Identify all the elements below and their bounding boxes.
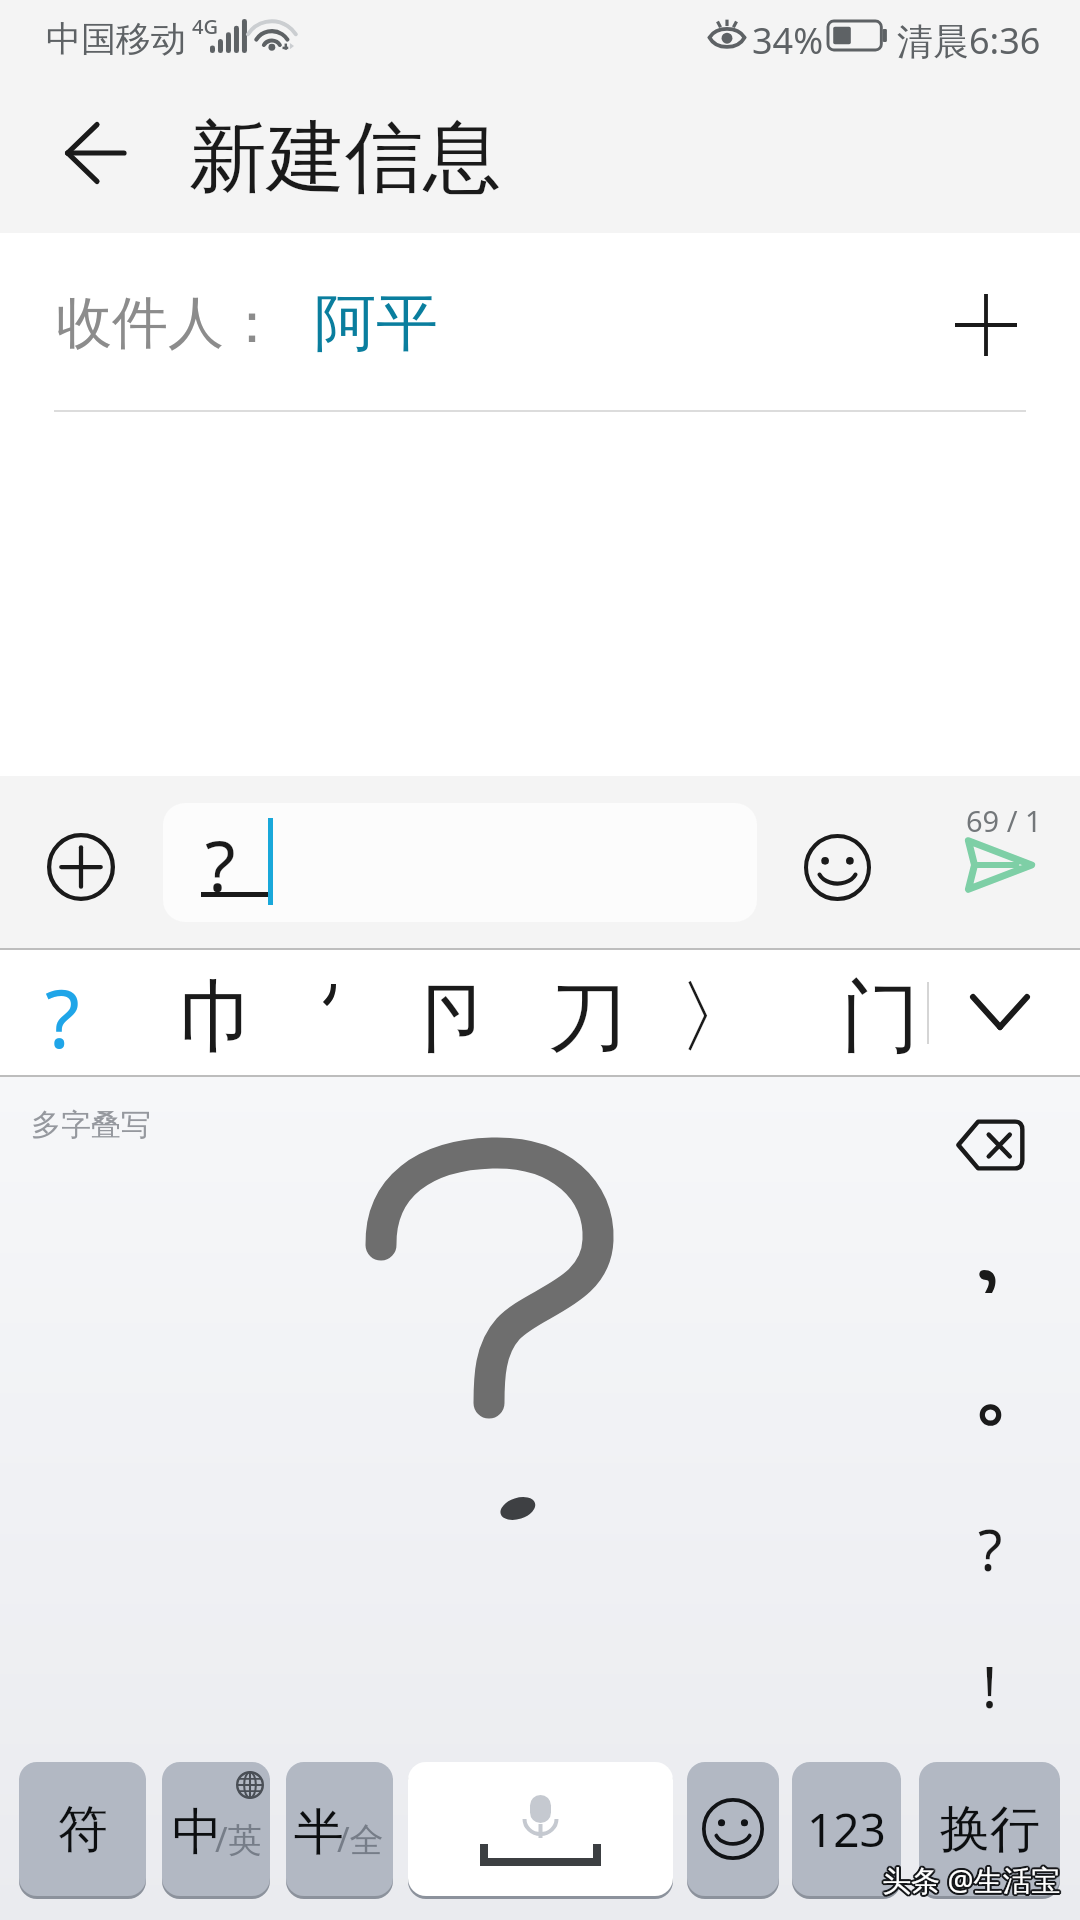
button[interactable]: 表情 <box>687 1762 779 1896</box>
button[interactable]: 半 <box>286 1762 393 1896</box>
button[interactable]: 符 <box>19 1762 146 1896</box>
staticText: 头条 @生活宝 <box>881 1859 1060 1899</box>
button[interactable]: 添加附件 <box>36 822 126 912</box>
button[interactable]: 换行 <box>919 1762 1060 1896</box>
button[interactable]: 表情 <box>787 817 887 917</box>
staticText: 头条 @生活宝 <box>884 1861 1063 1901</box>
staticText: 头条 @生活宝 <box>883 1859 1062 1899</box>
staticText: 头条 @生活宝 <box>884 1860 1063 1900</box>
button[interactable]: 中 <box>162 1762 270 1896</box>
button[interactable]: 添加收件人 <box>938 277 1034 373</box>
staticText: 头条 @生活宝 <box>883 1862 1062 1902</box>
staticText: 头条 @生活宝 <box>882 1862 1061 1902</box>
staticText: /英 <box>215 1816 262 1862</box>
staticText: 头条 @生活宝 <box>883 1858 1062 1898</box>
button[interactable]: ? <box>934 1499 1046 1599</box>
staticText: ? <box>205 817 236 912</box>
staticText: 头条 @生活宝 <box>881 1860 1060 1900</box>
staticText: 阿平 <box>314 284 438 362</box>
staticText: 123 <box>807 1798 886 1861</box>
staticText: 头条 @生活宝 <box>880 1859 1059 1899</box>
button[interactable]: 刀 <box>527 948 647 1077</box>
staticText: 头条 @生活宝 <box>882 1859 1061 1899</box>
staticText: 收件人： <box>56 288 280 359</box>
button[interactable]: 展开候选 <box>940 962 1060 1062</box>
staticText: 4G <box>192 13 218 40</box>
staticText: 多字叠写 <box>31 1106 151 1144</box>
staticText: 巾 <box>179 968 258 1068</box>
staticText: 头条 @生活宝 <box>880 1860 1059 1900</box>
staticText: 换行 <box>940 1798 1040 1861</box>
staticText: 头条 @生活宝 <box>881 1858 1060 1898</box>
staticText: 刀 <box>548 968 627 1068</box>
staticText: 中国移动 <box>46 17 186 61</box>
button[interactable]: 句号 <box>934 1375 1046 1455</box>
staticText: 头条 @生活宝 <box>883 1861 1062 1901</box>
staticText: 34% <box>752 16 824 65</box>
staticText: 中 <box>172 1801 222 1864</box>
button[interactable]: ! <box>934 1636 1046 1736</box>
button[interactable]: 123 <box>792 1762 901 1896</box>
staticText: 头条 @生活宝 <box>881 1861 1060 1901</box>
staticText: 头条 @生活宝 <box>882 1858 1061 1898</box>
button[interactable]: 门 <box>820 948 940 1077</box>
staticText: 〉 <box>678 968 757 1068</box>
staticText: ? <box>45 962 80 1071</box>
button[interactable]: 空格 <box>408 1762 673 1896</box>
staticText: 头条 @生活宝 <box>882 1860 1061 1900</box>
button[interactable]: 卪 <box>389 948 509 1077</box>
button[interactable]: ? <box>163 803 757 922</box>
staticText: 新建信息 <box>189 109 501 207</box>
staticText: 头条 @生活宝 <box>881 1862 1060 1902</box>
staticText: /全 <box>337 1816 384 1862</box>
button[interactable]: 发送 <box>930 786 1070 938</box>
staticText: 头条 @生活宝 <box>882 1861 1061 1901</box>
staticText: 69 / 1 <box>966 801 1042 840</box>
staticText: 门 <box>841 968 920 1068</box>
button[interactable]: 〉 <box>657 948 777 1077</box>
button[interactable]: ? <box>2 948 122 1077</box>
staticText: ! <box>982 1648 998 1724</box>
staticText: ? <box>978 1511 1003 1587</box>
button[interactable] <box>274 948 394 1077</box>
staticText: 头条 @生活宝 <box>880 1861 1059 1901</box>
staticText: 清晨6:36 <box>897 16 1041 65</box>
button[interactable]: 删除 <box>934 1105 1046 1185</box>
button[interactable]: 返回 <box>46 94 146 212</box>
staticText: 头条 @生活宝 <box>883 1860 1062 1900</box>
button[interactable]: 逗号 <box>934 1241 1046 1321</box>
staticText: 符 <box>58 1798 108 1861</box>
staticText: 卪 <box>410 968 489 1068</box>
staticText: 半 <box>294 1801 344 1864</box>
button[interactable]: 巾 <box>158 948 278 1077</box>
staticText: 头条 @生活宝 <box>884 1859 1063 1899</box>
